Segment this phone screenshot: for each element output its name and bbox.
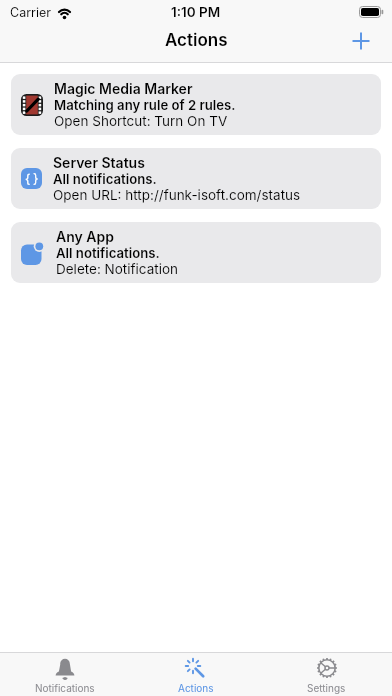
staticText: Server Status All notifications. Open UR… [53, 154, 301, 203]
staticText: Magic Media Marker Matching any rule of … [54, 80, 236, 129]
staticText: Actions [165, 30, 228, 51]
button[interactable]: Actions [130, 653, 261, 696]
staticText: { [25, 171, 31, 186]
staticText: Any App All notifications. Delete: Notif… [56, 228, 178, 277]
button[interactable]: Notifications [0, 653, 130, 696]
button[interactable]: { [11, 148, 381, 209]
button[interactable]: Settings [261, 653, 392, 696]
staticText: Notifications [35, 682, 95, 694]
staticText: Actions [178, 682, 214, 694]
staticText: Carrier [10, 5, 51, 20]
button[interactable]: Magic Media Marker Matching any rule of … [11, 74, 381, 135]
button[interactable] [344, 24, 378, 57]
staticText: 1:10 PM [171, 4, 221, 20]
button[interactable]: Any App All notifications. Delete: Notif… [11, 222, 381, 283]
staticText: Settings [307, 682, 346, 694]
staticText: } [33, 171, 39, 186]
